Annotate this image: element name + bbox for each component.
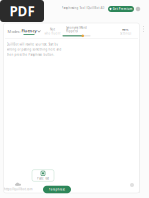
button[interactable]: Paraphrase — [43, 186, 71, 193]
button[interactable]: More — [116, 28, 134, 35]
staticText: Get Premium — [113, 7, 133, 11]
staticText: Fluency — [21, 28, 36, 33]
staticText: Synonyms (Word Flippers) — [66, 26, 87, 33]
button[interactable]: Not — [43, 28, 61, 35]
button[interactable]: Account — [136, 7, 140, 11]
staticText: https://quillbot.com — [4, 187, 32, 191]
staticText: Paraphrase — [48, 188, 65, 191]
button[interactable]: Modes: — [7, 28, 40, 35]
staticText: who fluent — [44, 32, 60, 35]
staticText: Modes: — [7, 29, 20, 34]
staticText: Paste Text — [37, 177, 49, 180]
staticText: PDF — [9, 2, 34, 20]
button[interactable]: Paste Text — [32, 170, 54, 181]
button[interactable]: Get Premium — [108, 6, 134, 12]
staticText: writing or pasting something here and — [6, 48, 61, 51]
staticText: QuillBot will rewrite your text. Start b… — [6, 43, 57, 46]
staticText: More — [122, 28, 129, 31]
staticText: then press the Paraphrase button. — [6, 53, 54, 56]
staticText: Not — [50, 28, 55, 31]
staticText: Paraphrasing Tool (QuillBot AI) — [61, 6, 104, 10]
staticText: Settings — [120, 32, 131, 35]
